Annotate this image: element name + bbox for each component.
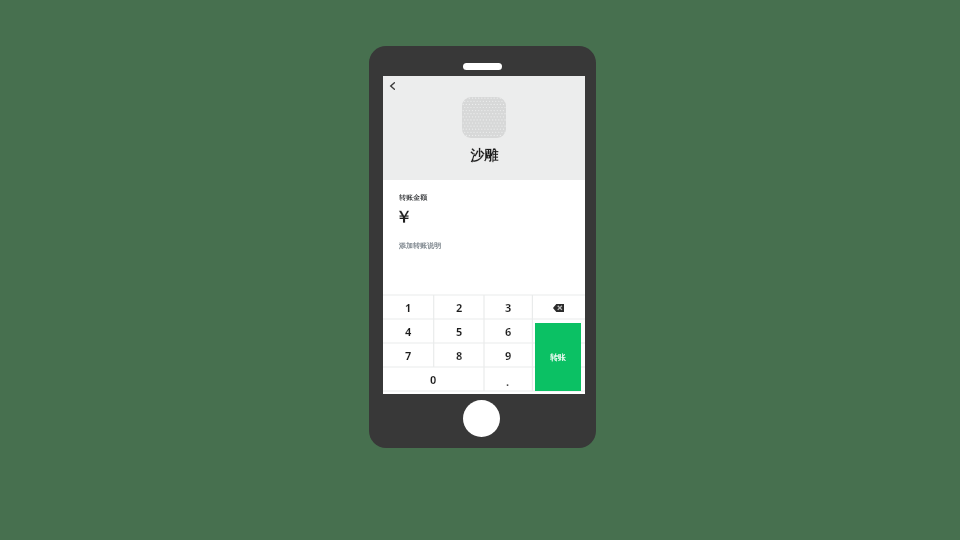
button[interactable]: Backspace [532, 295, 585, 319]
staticText: ￥ [395, 207, 412, 228]
staticText: 1 [405, 300, 412, 315]
staticText: 3 [505, 300, 512, 315]
staticText: 0 [430, 372, 437, 387]
button[interactable]: Back [383, 76, 404, 98]
button[interactable]: 2 [434, 295, 484, 319]
button[interactable]: 4 [383, 319, 434, 343]
button[interactable]: 5 [434, 319, 484, 343]
staticText: 转账 [550, 352, 566, 362]
staticText: 7 [405, 348, 412, 363]
staticText: 8 [456, 348, 463, 363]
button[interactable]: 转账 [535, 323, 581, 391]
button[interactable]: 0 [383, 367, 484, 391]
staticText: 2 [456, 300, 463, 315]
button[interactable]: Amount field [397, 204, 571, 226]
button[interactable]: 9 [484, 343, 532, 367]
button[interactable]: Contact avatar [462, 97, 506, 138]
button[interactable]: 1 [383, 295, 434, 319]
staticText: 转账金额 [399, 193, 427, 202]
button[interactable]: 添加转账说明 [399, 237, 489, 250]
staticText: 5 [456, 324, 463, 339]
button[interactable]: 7 [383, 343, 434, 367]
button[interactable]: 8 [434, 343, 484, 367]
button[interactable]: 3 [484, 295, 532, 319]
button[interactable]: . [484, 367, 532, 391]
staticText: 添加转账说明 [399, 241, 441, 250]
button[interactable]: Home [463, 400, 500, 437]
staticText: 9 [505, 348, 512, 363]
staticText: 4 [405, 324, 412, 339]
staticText: 沙雕 [470, 147, 498, 165]
staticText: 6 [505, 324, 512, 339]
button[interactable]: 6 [484, 319, 532, 343]
staticText: . [506, 374, 510, 389]
